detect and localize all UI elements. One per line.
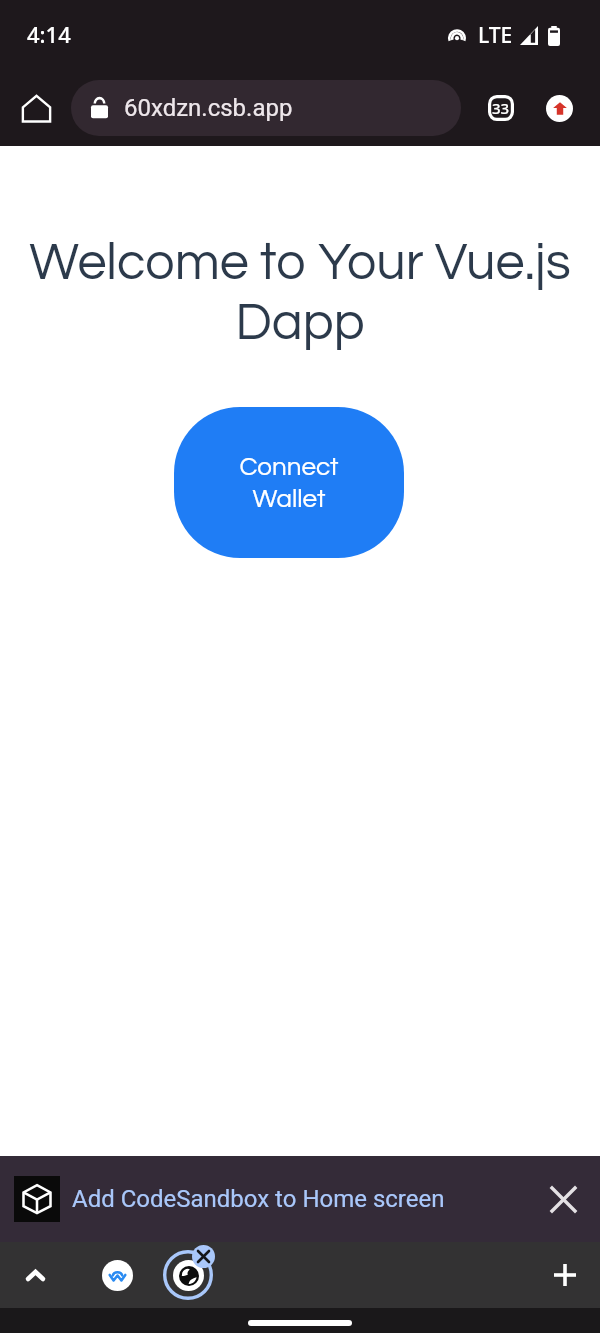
- button[interactable]: Dismiss: [540, 1176, 586, 1222]
- button[interactable]: New tab: [542, 1252, 588, 1298]
- button[interactable]: Add CodeSandbox to Home screen: [0, 1156, 600, 1242]
- staticText: 60xdzn.csb.app: [124, 94, 293, 122]
- button[interactable]: Close tab: [192, 1245, 215, 1268]
- button[interactable]: Switch tabs: [478, 85, 524, 131]
- button[interactable]: More options: [535, 84, 583, 132]
- button[interactable]: 60xdzn.csb.app: [71, 80, 461, 136]
- staticText: LTE: [478, 21, 513, 50]
- staticText: Welcome to Your Vue.js Dapp: [26, 236, 574, 350]
- button[interactable]: Current tab: [160, 1247, 216, 1303]
- staticText: Connect Wallet: [239, 454, 339, 512]
- button[interactable]: Home: [12, 84, 60, 132]
- staticText: 33: [492, 98, 510, 118]
- button[interactable]: WalletConnect tab: [94, 1252, 140, 1298]
- staticText: 4:14: [27, 19, 71, 49]
- button[interactable]: Expand tab strip: [11, 1251, 59, 1299]
- button[interactable]: Connect Wallet: [174, 407, 404, 558]
- staticText: Add CodeSandbox to Home screen: [72, 1185, 445, 1213]
